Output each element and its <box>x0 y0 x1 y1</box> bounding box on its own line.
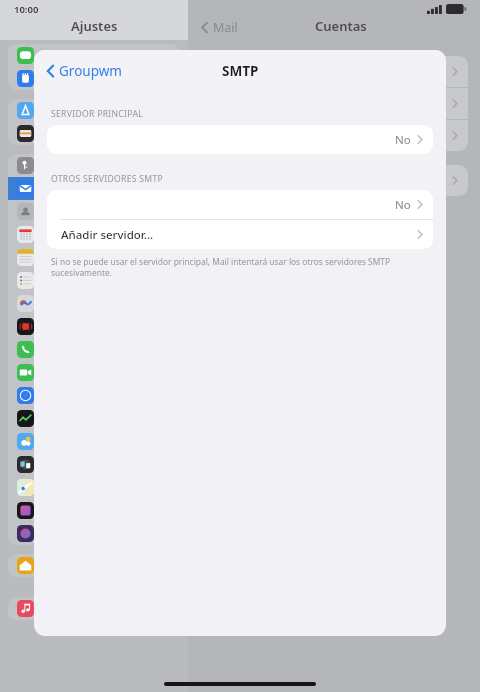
staticText: Mail <box>213 19 238 36</box>
staticText: Cuentas <box>315 17 367 35</box>
button[interactable] <box>8 223 180 246</box>
button[interactable]: Añadir servidor... <box>47 220 433 249</box>
button[interactable] <box>8 200 180 223</box>
button[interactable] <box>8 44 180 67</box>
button[interactable] <box>200 88 468 119</box>
staticText: OTROS SERVIDORES SMTP <box>51 173 164 185</box>
button[interactable] <box>8 67 180 90</box>
button[interactable] <box>8 476 180 499</box>
staticText: Añadir servidor... <box>61 227 154 243</box>
button[interactable] <box>8 361 180 384</box>
staticText: SMTP <box>222 62 259 80</box>
button[interactable] <box>8 384 180 407</box>
button[interactable] <box>8 177 180 200</box>
staticText: Si no se puede usar el servidor principa… <box>51 256 429 278</box>
staticText: Ajustes <box>71 17 118 35</box>
button[interactable] <box>200 165 468 196</box>
button[interactable] <box>8 99 180 122</box>
staticText: Groupwm <box>59 62 122 80</box>
button[interactable]: Música <box>8 597 180 620</box>
button[interactable] <box>8 522 180 545</box>
button[interactable] <box>8 315 180 338</box>
button[interactable]: Mail <box>200 19 238 36</box>
button[interactable] <box>8 246 180 269</box>
button[interactable]: No <box>47 190 433 219</box>
button[interactable] <box>8 154 180 177</box>
button[interactable] <box>8 338 180 361</box>
button[interactable] <box>8 430 180 453</box>
button[interactable]: No <box>47 125 433 154</box>
button[interactable] <box>8 453 180 476</box>
button[interactable]: Casa <box>8 554 180 577</box>
button[interactable] <box>200 120 468 151</box>
staticText: SERVIDOR PRINCIPAL <box>51 108 143 120</box>
button[interactable]: Groupwm <box>43 58 125 84</box>
staticText: No <box>395 132 411 148</box>
button[interactable] <box>200 56 468 87</box>
staticText: 10:00 <box>14 3 39 16</box>
button[interactable] <box>8 122 180 145</box>
button[interactable] <box>8 499 180 522</box>
button[interactable] <box>8 269 180 292</box>
button[interactable] <box>8 407 180 430</box>
staticText: No <box>395 197 411 213</box>
button[interactable] <box>8 292 180 315</box>
